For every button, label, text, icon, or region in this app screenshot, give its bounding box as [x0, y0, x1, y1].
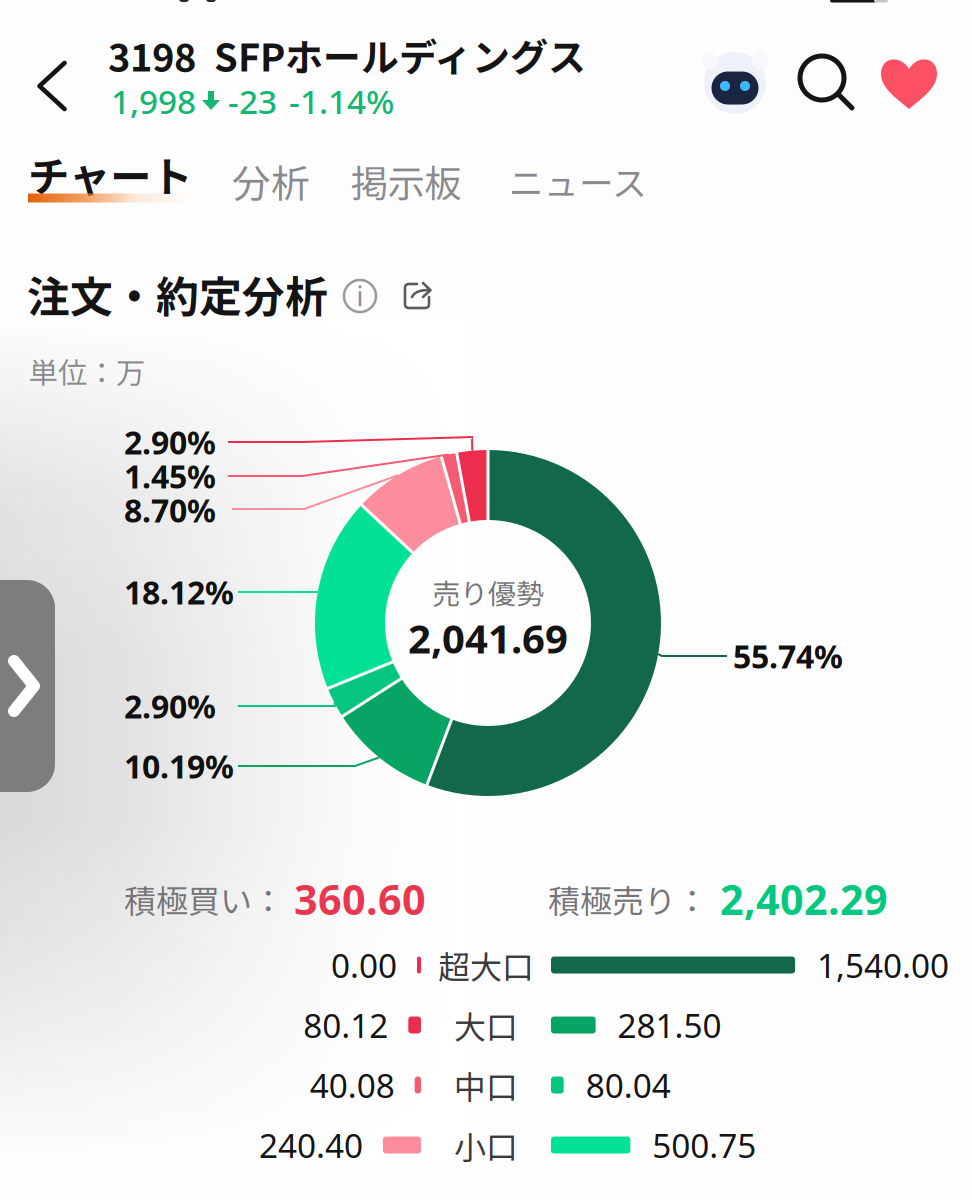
- staticText: 2,402.29: [720, 872, 888, 926]
- staticText: 注文・約定分析: [27, 263, 328, 325]
- staticText: 掲示板: [350, 154, 461, 208]
- staticText: チャート: [28, 144, 192, 204]
- staticText: 1,998: [111, 79, 196, 123]
- button[interactable]: Add to watchlist: [880, 55, 938, 111]
- staticText: 500.75: [652, 1123, 756, 1167]
- button[interactable]: Search: [798, 54, 856, 112]
- staticText: 中口: [454, 1062, 518, 1108]
- button[interactable]: Info: [337, 273, 383, 319]
- staticText: 2.90%: [124, 685, 216, 727]
- staticText: 80.12: [303, 1003, 388, 1047]
- button[interactable]: Show side panel: [0, 0, 972, 1200]
- button[interactable]: 掲示板: [0, 0, 972, 1200]
- staticText: 積極売り：: [548, 876, 708, 922]
- button[interactable]: ニュース: [0, 0, 972, 1200]
- staticText: i: [356, 278, 363, 314]
- button[interactable]: チャート: [0, 0, 972, 1200]
- staticText: 1.45%: [124, 455, 216, 497]
- staticText: 55.74%: [733, 635, 843, 677]
- staticText: ニュース: [509, 156, 647, 206]
- staticText: -1.14%: [289, 79, 394, 123]
- staticText: 281.50: [618, 1003, 722, 1047]
- staticText: 18.12%: [124, 571, 234, 613]
- staticText: -23: [228, 79, 277, 123]
- staticText: 1,540.00: [817, 943, 949, 987]
- staticText: 0.00: [331, 943, 397, 987]
- staticText: 積極買い：: [124, 876, 284, 922]
- staticText: 360.60: [294, 872, 426, 926]
- staticText: 3198 SFPホールディングス: [108, 27, 586, 82]
- button[interactable]: 分析: [0, 0, 972, 1200]
- staticText: 240.40: [259, 1123, 363, 1167]
- staticText: 10.19%: [124, 745, 234, 787]
- staticText: 大口: [454, 1002, 518, 1048]
- staticText: 8.70%: [124, 489, 216, 531]
- staticText: 超大口: [438, 942, 534, 988]
- staticText: 小口: [454, 1122, 518, 1168]
- button[interactable]: Share: [396, 271, 442, 317]
- staticText: 2.90%: [124, 421, 216, 463]
- staticText: 2,041.69: [408, 611, 568, 664]
- button[interactable]: Back: [0, 0, 972, 1200]
- staticText: 分析: [232, 153, 310, 209]
- staticText: 80.04: [586, 1063, 671, 1107]
- button[interactable]: AI assistant: [699, 47, 771, 119]
- staticText: 単位：万: [29, 350, 145, 392]
- staticText: 40.08: [310, 1063, 395, 1107]
- staticText: 売り優勢: [432, 572, 544, 612]
